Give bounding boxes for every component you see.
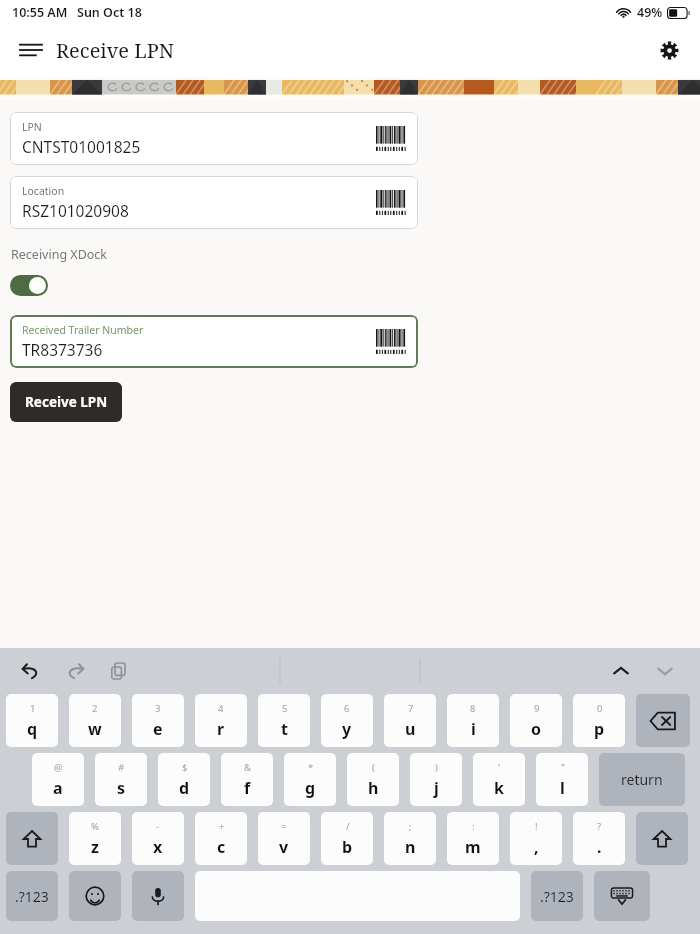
staticText: 0: [597, 702, 603, 715]
staticText: #: [118, 761, 125, 774]
staticText: -: [156, 820, 160, 833]
staticText: c: [217, 836, 226, 858]
staticText: 3: [155, 702, 161, 715]
staticText: g: [305, 777, 316, 799]
button[interactable]: Received Trailer Number: [10, 315, 418, 368]
button[interactable]: -: [132, 812, 184, 865]
button[interactable]: Settings: [650, 31, 688, 69]
staticText: n: [405, 836, 416, 858]
button[interactable]: Open navigation menu: [14, 33, 48, 67]
button[interactable]: Scan Location barcode: [374, 188, 408, 218]
staticText: %: [91, 820, 99, 833]
staticText: =: [281, 820, 287, 833]
button[interactable]: Undo: [18, 658, 44, 684]
staticText: return: [621, 770, 663, 789]
button[interactable]: LPN: [10, 112, 418, 165]
staticText: .?123: [15, 887, 49, 906]
button[interactable]: Shift: [6, 812, 58, 865]
staticText: 6: [344, 702, 350, 715]
button[interactable]: 4: [195, 694, 247, 747]
button[interactable]: Next field: [652, 658, 678, 684]
staticText: i: [471, 718, 476, 740]
button[interactable]: 5: [258, 694, 310, 747]
button[interactable]: .?123: [6, 871, 58, 921]
staticText: CNTST01001825: [22, 136, 141, 157]
button[interactable]: Dictation: [132, 871, 184, 921]
button[interactable]: ': [473, 753, 525, 806]
button[interactable]: Scan Received Trailer Number barcode: [374, 327, 408, 357]
button[interactable]: ): [410, 753, 462, 806]
staticText: ): [435, 761, 438, 774]
staticText: TR8373736: [22, 339, 103, 360]
button[interactable]: 6: [321, 694, 373, 747]
button[interactable]: ;: [384, 812, 436, 865]
button[interactable]: %: [69, 812, 121, 865]
button[interactable]: 0: [573, 694, 625, 747]
button[interactable]: @: [32, 753, 84, 806]
button[interactable]: 8: [447, 694, 499, 747]
staticText: w: [88, 718, 102, 740]
button[interactable]: *: [284, 753, 336, 806]
button[interactable]: Emoji: [69, 871, 121, 921]
staticText: m: [465, 836, 481, 858]
staticText: 7: [408, 702, 414, 715]
staticText: q: [27, 718, 38, 740]
staticText: o: [531, 718, 542, 740]
button[interactable]: (: [347, 753, 399, 806]
button[interactable]: Location: [10, 176, 418, 229]
button[interactable]: Paste: [106, 658, 132, 684]
button[interactable]: Scan LPN barcode: [374, 124, 408, 154]
button[interactable]: Shift: [636, 812, 688, 865]
button[interactable]: return: [599, 753, 685, 806]
button[interactable]: Backspace: [636, 694, 690, 747]
staticText: v: [279, 836, 289, 858]
staticText: 8: [470, 702, 476, 715]
button[interactable]: #: [95, 753, 147, 806]
button[interactable]: Previous field: [608, 658, 634, 684]
button[interactable]: 9: [510, 694, 562, 747]
button[interactable]: 1: [6, 694, 58, 747]
button[interactable]: Receive LPN: [10, 382, 122, 422]
staticText: :: [472, 820, 475, 833]
staticText: &: [244, 761, 251, 774]
button[interactable]: Redo: [62, 658, 88, 684]
staticText: 10:55 AM: [12, 4, 68, 21]
button[interactable]: 3: [132, 694, 184, 747]
staticText: ": [561, 761, 565, 774]
button[interactable]: Hide keyboard: [594, 871, 650, 921]
staticText: Receiving XDock: [11, 246, 108, 263]
staticText: d: [179, 777, 190, 799]
staticText: e: [153, 718, 163, 740]
staticText: 5: [282, 702, 288, 715]
staticText: b: [342, 836, 353, 858]
button[interactable]: 7: [384, 694, 436, 747]
staticText: Receive LPN: [25, 393, 108, 411]
staticText: y: [342, 718, 352, 740]
staticText: RSZ101020908: [22, 200, 129, 221]
button[interactable]: $: [158, 753, 210, 806]
button[interactable]: .?123: [531, 871, 583, 921]
staticText: p: [594, 718, 605, 740]
staticText: u: [405, 718, 416, 740]
button[interactable]: Receiving XDock toggle, on: [10, 275, 48, 296]
staticText: Received Trailer Number: [22, 323, 144, 337]
button[interactable]: 2: [69, 694, 121, 747]
button[interactable]: ?: [573, 812, 625, 865]
button[interactable]: :: [447, 812, 499, 865]
button[interactable]: =: [258, 812, 310, 865]
staticText: 9: [534, 702, 540, 715]
staticText: /: [346, 820, 350, 833]
staticText: s: [117, 777, 126, 799]
staticText: r: [217, 718, 225, 740]
staticText: *: [308, 761, 314, 774]
button[interactable]: ": [536, 753, 588, 806]
staticText: 2: [92, 702, 98, 715]
staticText: (: [372, 761, 375, 774]
button[interactable]: &: [221, 753, 273, 806]
button[interactable]: !: [510, 812, 562, 865]
staticText: a: [53, 777, 63, 799]
staticText: !: [535, 820, 538, 833]
button[interactable]: +: [195, 812, 247, 865]
button[interactable]: /: [321, 812, 373, 865]
